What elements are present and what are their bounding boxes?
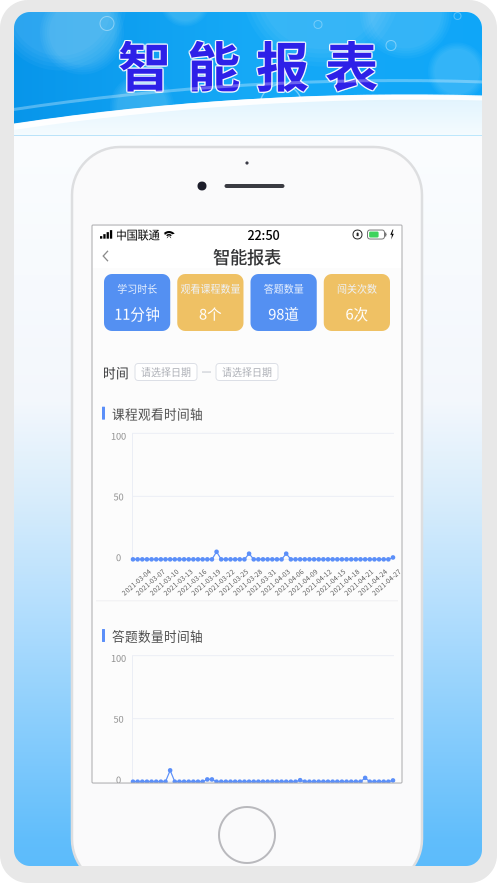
staticText: 智 xyxy=(118,24,171,101)
staticText: 11分钟 xyxy=(114,303,160,324)
staticText: 2021-04-24 xyxy=(361,588,397,598)
staticText: 报 xyxy=(256,26,309,103)
staticText: 2021-03-22 xyxy=(208,810,244,820)
staticText: 2021-04-03 xyxy=(264,810,300,820)
staticText: 表 xyxy=(325,24,378,101)
staticText: 2021-03-19 xyxy=(194,810,230,820)
staticText: 能 xyxy=(187,24,240,101)
staticText: 能 xyxy=(188,25,241,102)
button[interactable]: 请选择日期 xyxy=(135,363,197,380)
staticText: 2021-03-19 xyxy=(194,588,230,598)
staticText: 2021-04-21 xyxy=(347,588,383,598)
staticText: 表 xyxy=(326,26,379,103)
staticText: 智 xyxy=(117,26,170,103)
staticText: 22:50 xyxy=(247,225,279,244)
staticText: 2021-03-28 xyxy=(236,588,272,598)
staticText: 100 xyxy=(111,651,126,665)
staticText: 表 xyxy=(325,25,378,102)
staticText: 报 xyxy=(256,25,309,102)
staticText: 2021-03-16 xyxy=(181,588,217,598)
staticText: 50 xyxy=(113,712,123,725)
button[interactable]: 观看课程数量 xyxy=(177,274,243,331)
staticText: 2021-03-07 xyxy=(139,588,175,598)
staticText: 报 xyxy=(257,25,310,102)
staticText: 表 xyxy=(324,24,377,101)
staticText: 2021-04-06 xyxy=(278,588,314,598)
staticText: 智 xyxy=(118,25,171,102)
staticText: 报 xyxy=(257,24,310,101)
staticText: 表 xyxy=(324,26,377,103)
staticText: 智 xyxy=(118,26,171,103)
staticText: 答题数量时间轴 xyxy=(112,626,203,645)
staticText: 6次 xyxy=(345,303,368,324)
staticText: 能 xyxy=(187,26,240,103)
staticText: 2021-03-22 xyxy=(208,588,244,598)
staticText: 能 xyxy=(186,24,239,101)
staticText: 能 xyxy=(188,26,241,103)
staticText: 报 xyxy=(256,24,309,101)
staticText: 闯关次数 xyxy=(337,281,377,296)
staticText: 学习时长 xyxy=(117,281,157,296)
staticText: 2021-03-25 xyxy=(222,810,258,820)
staticText: 2021-04-15 xyxy=(319,588,355,598)
staticText: 2021-04-09 xyxy=(292,588,328,598)
staticText: 能 xyxy=(187,25,240,102)
staticText: 100 xyxy=(111,429,126,442)
staticText: 智 xyxy=(119,25,172,102)
staticText: 表 xyxy=(326,24,379,101)
staticText: 表 xyxy=(324,25,377,102)
staticText: 2021-03-04 xyxy=(125,588,161,598)
staticText: 能 xyxy=(188,24,241,101)
staticText: 表 xyxy=(325,26,378,103)
staticText: 报 xyxy=(255,24,308,101)
staticText: 智 xyxy=(117,25,170,102)
staticText: 智能报表 xyxy=(213,243,281,269)
staticText: 报 xyxy=(257,26,310,103)
staticText: 中国联通 xyxy=(115,226,159,243)
staticText: 观看课程数量 xyxy=(180,281,240,296)
staticText: 答题数量 xyxy=(264,281,304,296)
staticText: 请选择日期 xyxy=(222,365,272,379)
staticText: 报 xyxy=(255,25,308,102)
staticText: 2021-04-27 xyxy=(375,588,411,598)
staticText: 课程观看时间轴 xyxy=(112,404,203,422)
staticText: 时间 xyxy=(103,363,129,381)
staticText: 2021-03-10 xyxy=(153,588,189,598)
staticText: 请选择日期 xyxy=(141,365,191,379)
button[interactable]: 答题数量 xyxy=(250,274,317,331)
staticText: 2021-04-12 xyxy=(306,588,342,598)
staticText: 50 xyxy=(113,490,123,503)
button[interactable]: 学习时长 xyxy=(104,274,170,331)
button[interactable]: Back xyxy=(92,244,121,268)
button[interactable]: 闯关次数 xyxy=(324,274,390,331)
staticText: 表 xyxy=(326,25,379,102)
staticText: 2021-03-25 xyxy=(222,588,258,598)
staticText: 2021-03-13 xyxy=(167,588,203,598)
staticText: 8个 xyxy=(199,303,222,324)
staticText: 智 xyxy=(119,24,172,101)
staticText: 报 xyxy=(255,26,308,103)
staticText: 0 xyxy=(116,773,121,786)
staticText: 2021-03-31 xyxy=(250,588,286,598)
staticText: 智 xyxy=(117,24,170,101)
staticText: 98道 xyxy=(268,303,299,324)
button[interactable]: 请选择日期 xyxy=(216,363,278,380)
staticText: 0 xyxy=(116,550,121,564)
staticText: 能 xyxy=(186,26,239,103)
staticText: 2021-03-31 xyxy=(250,810,286,820)
staticText: 2021-04-18 xyxy=(333,588,369,598)
staticText: 智 xyxy=(119,26,172,103)
